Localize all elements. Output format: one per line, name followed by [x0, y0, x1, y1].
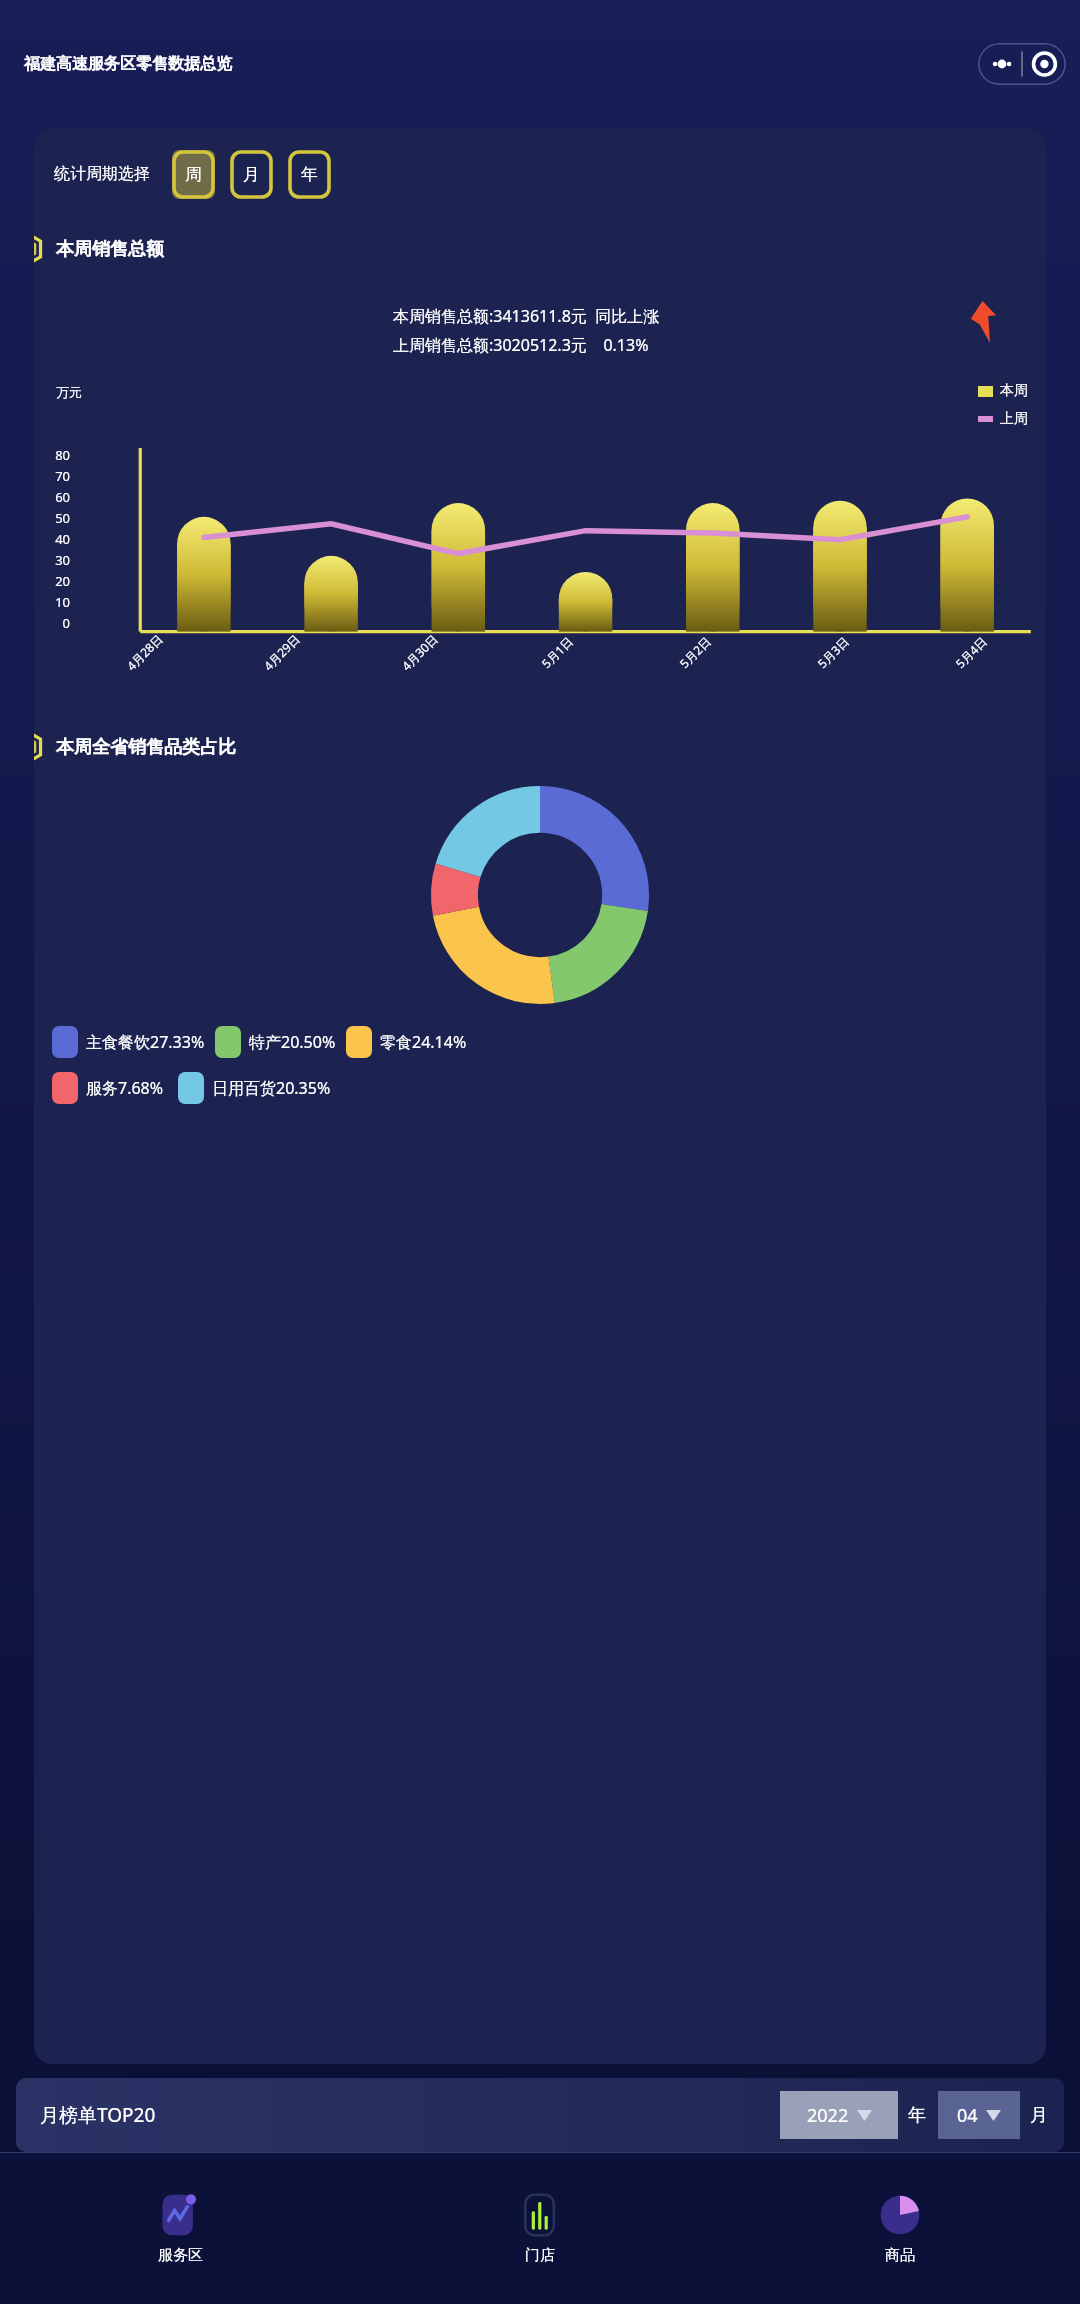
staticText: 本周销售总额:3413611.8元 同比上涨 [393, 305, 660, 327]
staticText: 2022 [807, 2103, 849, 2128]
staticText: 万元 [56, 384, 82, 400]
button[interactable]: 月 [230, 150, 273, 199]
staticText: 门店 [525, 2246, 555, 2265]
staticText: 4月28日 [123, 630, 166, 673]
staticText: 本周全省销售品类占比 [56, 736, 236, 759]
staticText: 服务区 [158, 2246, 203, 2265]
staticText: 30 [55, 551, 70, 569]
staticText: 60 [55, 488, 70, 506]
button[interactable]: 月榜单TOP20 [16, 2078, 1064, 2152]
staticText: 统计周期选择 [54, 164, 150, 184]
button[interactable]: 日用百货20.35% [178, 1072, 331, 1104]
staticText: 本周 [1000, 382, 1028, 400]
staticText: 40 [55, 530, 70, 548]
staticText: 50 [55, 509, 70, 527]
staticText: 月榜单TOP20 [40, 2102, 156, 2128]
staticText: 4月29日 [260, 630, 303, 673]
button[interactable]: 门店 [360, 2153, 720, 2304]
staticText: 0 [62, 614, 70, 632]
staticText: 5月1日 [538, 633, 576, 671]
button[interactable]: More options and close [978, 43, 1066, 85]
staticText: 日用百货20.35% [212, 1077, 331, 1099]
staticText: 商品 [885, 2246, 915, 2265]
staticText: 零食24.14% [380, 1031, 467, 1053]
button[interactable]: 特产20.50% [215, 1026, 336, 1058]
staticText: 5月4日 [952, 633, 990, 671]
staticText: 4月30日 [398, 630, 441, 673]
staticText: 年 [908, 2104, 926, 2127]
button[interactable]: 04 [938, 2091, 1020, 2139]
button[interactable]: 主食餐饮27.33% [52, 1026, 205, 1058]
staticText: 70 [55, 467, 70, 485]
button[interactable]: 零食24.14% [346, 1026, 467, 1058]
staticText: 04 [957, 2103, 978, 2128]
button[interactable]: 周 [172, 150, 215, 199]
staticText: 主食餐饮27.33% [86, 1031, 205, 1053]
staticText: 福建高速服务区零售数据总览 [24, 54, 232, 74]
staticText: 服务7.68% [86, 1077, 164, 1099]
staticText: 上周销售总额:3020512.3元 0.13% [393, 334, 649, 356]
staticText: 20 [55, 572, 70, 590]
staticText: 10 [55, 593, 70, 611]
staticText: 月 [243, 164, 260, 185]
staticText: 月 [1030, 2104, 1048, 2127]
button[interactable]: 服务7.68% [52, 1072, 164, 1104]
staticText: 5月2日 [676, 633, 714, 671]
staticText: 周 [185, 164, 202, 185]
staticText: 年 [301, 164, 318, 185]
button[interactable]: 服务区 [0, 2153, 360, 2304]
staticText: 80 [55, 446, 70, 464]
staticText: 特产20.50% [249, 1031, 336, 1053]
staticText: 5月3日 [814, 633, 852, 671]
staticText: 上周 [1000, 410, 1028, 428]
button[interactable]: 商品 [720, 2153, 1080, 2304]
button[interactable]: 2022 [780, 2091, 898, 2139]
staticText: 本周销售总额 [56, 238, 164, 261]
button[interactable]: 年 [288, 150, 331, 199]
